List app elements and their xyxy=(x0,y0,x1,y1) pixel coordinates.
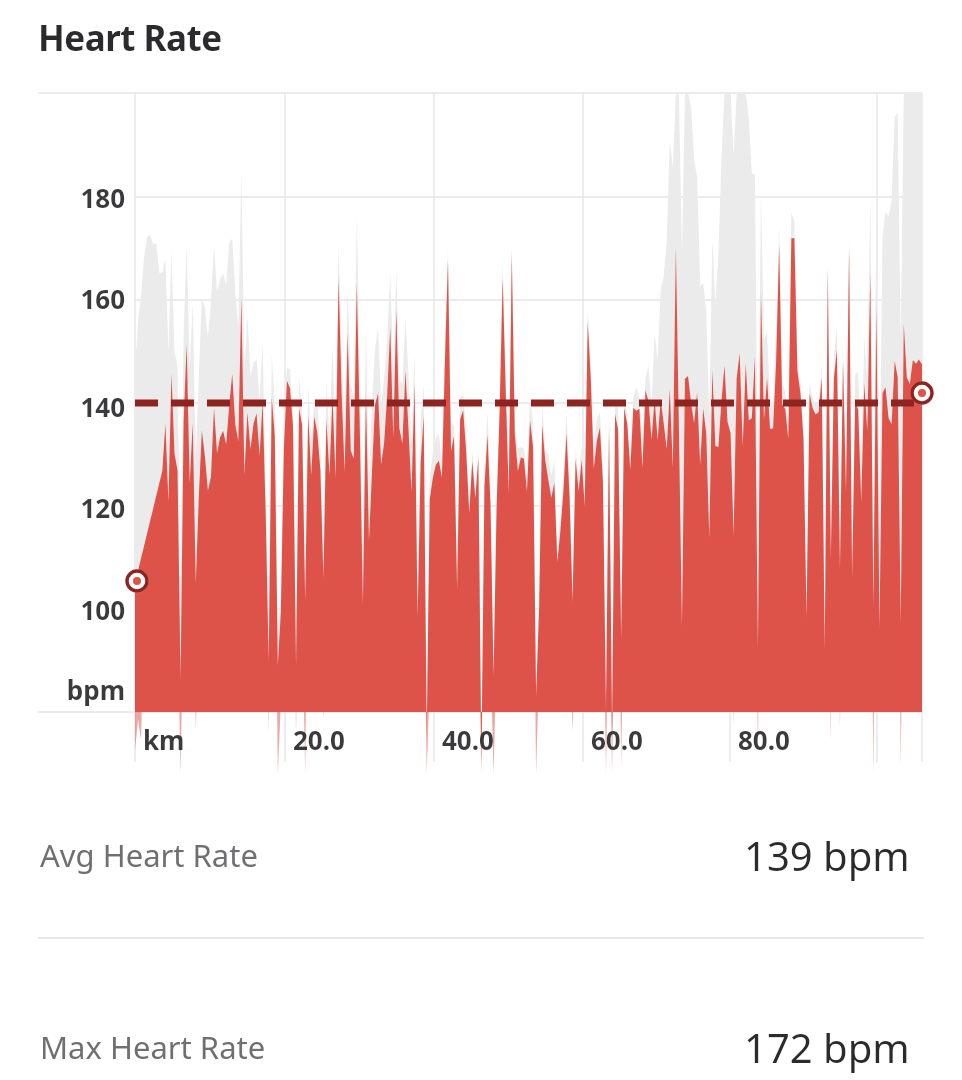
staticText: 100 xyxy=(0,592,125,627)
button[interactable]: Heart Rate xyxy=(38,14,222,62)
staticText: bpm xyxy=(0,672,125,707)
staticText: 172 bpm xyxy=(744,1020,910,1074)
staticText: 60.0 xyxy=(591,722,643,757)
staticText: 80.0 xyxy=(738,722,790,757)
staticText: 180 xyxy=(0,180,125,215)
staticText: 120 xyxy=(0,490,125,525)
button[interactable]: Max Heart Rate xyxy=(0,992,962,1080)
staticText: 140 xyxy=(0,389,125,424)
staticText: 20.0 xyxy=(293,722,345,757)
staticText: Max Heart Rate xyxy=(40,1026,266,1068)
staticText: 40.0 xyxy=(442,722,494,757)
button[interactable]: Avg Heart Rate xyxy=(0,800,962,910)
staticText: 139 bpm xyxy=(744,828,910,882)
staticText: km xyxy=(143,722,185,757)
staticText: Avg Heart Rate xyxy=(40,834,258,876)
staticText: 160 xyxy=(0,281,125,316)
